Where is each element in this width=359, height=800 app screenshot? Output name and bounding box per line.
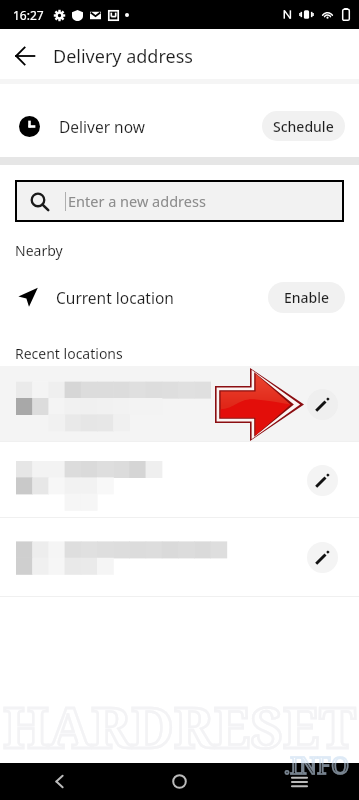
staticText: Current location <box>56 287 174 308</box>
staticText: Nearby <box>15 241 63 260</box>
button[interactable]: Deliver now <box>0 95 359 157</box>
button[interactable]: Edit <box>307 465 338 496</box>
button[interactable]: Edit <box>307 389 338 420</box>
staticText: HARDRESET <box>3 688 356 764</box>
button[interactable]: Recent apps <box>239 763 359 800</box>
staticText: Deliver now <box>59 116 145 137</box>
staticText: Enter a new address <box>68 191 206 211</box>
staticText: 16:27 <box>13 7 44 23</box>
button[interactable]: Edit <box>0 366 359 442</box>
button[interactable]: Schedule <box>262 111 345 141</box>
button[interactable]: Current location <box>0 271 359 323</box>
staticText: Schedule <box>273 117 334 136</box>
button[interactable]: Back <box>0 763 119 800</box>
staticText: Recent locations <box>15 344 123 363</box>
button[interactable]: Home <box>119 763 239 800</box>
staticText: .INFO <box>284 748 350 781</box>
button[interactable]: Edit <box>0 442 359 518</box>
button[interactable]: Edit <box>0 518 359 596</box>
staticText: Enable <box>284 288 330 307</box>
staticText: Delivery address <box>53 44 193 69</box>
button[interactable]: Back <box>0 31 50 81</box>
button[interactable]: Edit <box>307 542 338 573</box>
button[interactable]: Enter a new address <box>17 182 342 220</box>
button[interactable]: Enable <box>268 282 345 313</box>
